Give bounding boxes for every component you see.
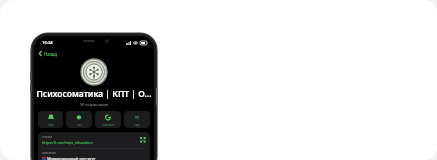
staticText: описание [42,151,56,155]
staticText: чат [77,123,82,127]
staticText: Назад [44,51,57,57]
staticText: покинуть [102,123,115,127]
staticText: 16:34 [42,40,53,46]
button[interactable]: QR-код [140,137,146,143]
button[interactable]: ещё [124,111,150,128]
button[interactable]: звук [38,111,63,128]
button[interactable]: ссылка [38,132,150,160]
staticText: https://t.me/mipv_education [42,140,93,145]
button[interactable]: Назад [34,49,154,58]
staticText: ссылка [42,135,53,139]
button[interactable]: чат [66,111,92,128]
staticText: 3K подписчиков [34,102,154,107]
staticText: звук [48,123,54,127]
staticText: Международный институт [47,156,96,160]
staticText: ещё [134,123,140,127]
staticText: Психосоматика | КПТ | О... [34,88,154,100]
button[interactable]: покинуть [95,111,121,128]
